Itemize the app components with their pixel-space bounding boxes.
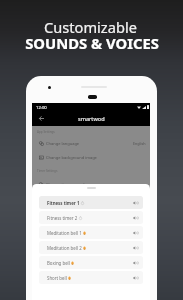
staticText: App Settings <box>37 130 55 134</box>
staticText: Meditation bell 1 <box>47 230 82 236</box>
button[interactable]: Change background image <box>32 152 150 162</box>
button[interactable]: Back <box>37 114 46 123</box>
button[interactable]: Short bell <box>39 271 143 284</box>
staticText: English <box>133 141 146 146</box>
staticText: smartwod <box>78 115 105 123</box>
other: Preview Short bell <box>133 276 138 280</box>
other: Preview Meditation bell 2 <box>133 246 138 250</box>
staticText: Boxing bell <box>47 260 70 266</box>
button[interactable]: Change language <box>32 138 150 148</box>
staticText: Change background image <box>46 155 97 160</box>
staticText: 12:00 <box>36 105 47 111</box>
button[interactable]: Change timer sound <box>32 179 150 189</box>
staticText: SOUNDS & VOICES <box>25 33 159 53</box>
button[interactable]: Fitness timer 2 <box>39 211 143 224</box>
staticText: Fitness timer 2 <box>47 215 78 221</box>
other: Preview Fitness timer 2 <box>133 216 138 220</box>
staticText: Change language <box>46 141 80 146</box>
button[interactable]: Boxing bell <box>39 256 143 269</box>
other: Preview Fitness timer 1 <box>133 201 138 205</box>
staticText: Meditation bell 2 <box>47 245 82 251</box>
button[interactable]: Meditation bell 2 <box>39 241 143 254</box>
staticText: Change timer sound <box>46 182 85 187</box>
other: Preview Meditation bell 1 <box>133 231 138 235</box>
button[interactable]: Meditation bell 1 <box>39 226 143 239</box>
staticText: Timer Settings <box>37 169 58 173</box>
staticText: Fitness timer 1 <box>47 200 80 206</box>
other: Preview Boxing bell <box>133 261 138 265</box>
staticText: Short bell <box>47 275 67 281</box>
button[interactable]: Fitness timer 1 <box>39 196 143 209</box>
staticText: Customizable <box>44 17 137 37</box>
